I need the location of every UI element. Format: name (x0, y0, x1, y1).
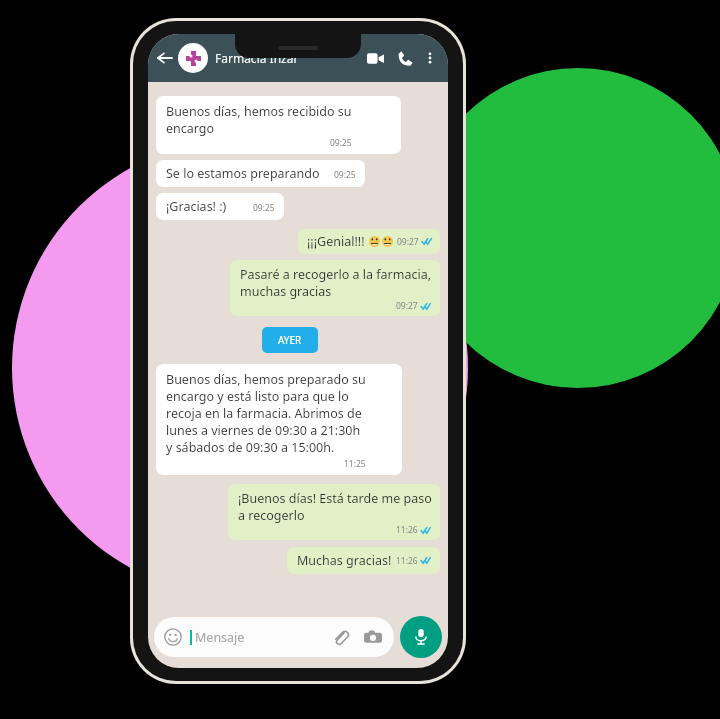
staticText: 11:26 (396, 555, 418, 567)
staticText: 09:25 (334, 169, 356, 181)
staticText: muchas gracias (240, 283, 332, 300)
button[interactable]: Profile photo (178, 43, 208, 73)
staticText: Mensaje (195, 629, 245, 646)
button[interactable]: Muchas gracias! (287, 547, 440, 574)
staticText: ¡Buenos días! Está tarde me paso (238, 490, 432, 507)
staticText: encargo (166, 120, 215, 137)
staticText: Buenos días, hemos preparado su (166, 371, 366, 388)
staticText: 11:26 (396, 524, 418, 536)
button[interactable]: Voice message (400, 616, 442, 658)
button[interactable]: ¡Buenos días! Está tarde me paso (228, 484, 440, 540)
staticText: lunes a viernes de 09:30 a 21:30h (166, 422, 361, 439)
staticText: Muchas gracias! (297, 552, 392, 569)
staticText: 09:25 (330, 137, 352, 149)
button[interactable]: ¡Gracias! :) (156, 193, 284, 220)
staticText: Farmacia Inzar (215, 50, 299, 66)
staticText: a recogerlo (238, 507, 305, 524)
button[interactable]: Camera (362, 626, 384, 648)
button[interactable]: Attach (330, 627, 350, 647)
button[interactable]: AYER (262, 327, 318, 353)
button[interactable]: Back (152, 45, 178, 71)
button[interactable]: Buenos días, hemos preparado su (156, 364, 402, 475)
button[interactable]: Buenos días, hemos recibido su (156, 96, 401, 154)
staticText: y sábados de 09:30 a 15:00h. (166, 439, 335, 456)
button[interactable]: Video call (362, 45, 388, 71)
staticText: Se lo estamos preparando (166, 165, 320, 182)
staticText: encargo y está listo para que lo (166, 388, 349, 405)
button[interactable]: Pasaré a recogerlo a la farmacia, (230, 260, 440, 316)
button[interactable]: More options (420, 48, 440, 68)
button[interactable]: Se lo estamos preparando (156, 160, 365, 187)
staticText: 09:25 (253, 202, 275, 214)
staticText: recoja en la farmacia. Abrimos de (166, 405, 362, 422)
button[interactable]: Mensaje (154, 617, 394, 657)
staticText: 11:25 (344, 458, 366, 470)
staticText: Buenos días, hemos recibido su (166, 103, 352, 120)
staticText: AYER (278, 333, 302, 347)
staticText: ¡¡¡Genial!!! (307, 233, 365, 250)
staticText: 09:27 (397, 236, 419, 248)
button[interactable]: Call (392, 45, 418, 71)
button[interactable]: ¡¡¡Genial!!! (298, 229, 440, 254)
staticText: Pasaré a recogerlo a la farmacia, (240, 266, 432, 283)
staticText: ¡Gracias! :) (166, 198, 227, 215)
staticText: 09:27 (396, 300, 418, 312)
